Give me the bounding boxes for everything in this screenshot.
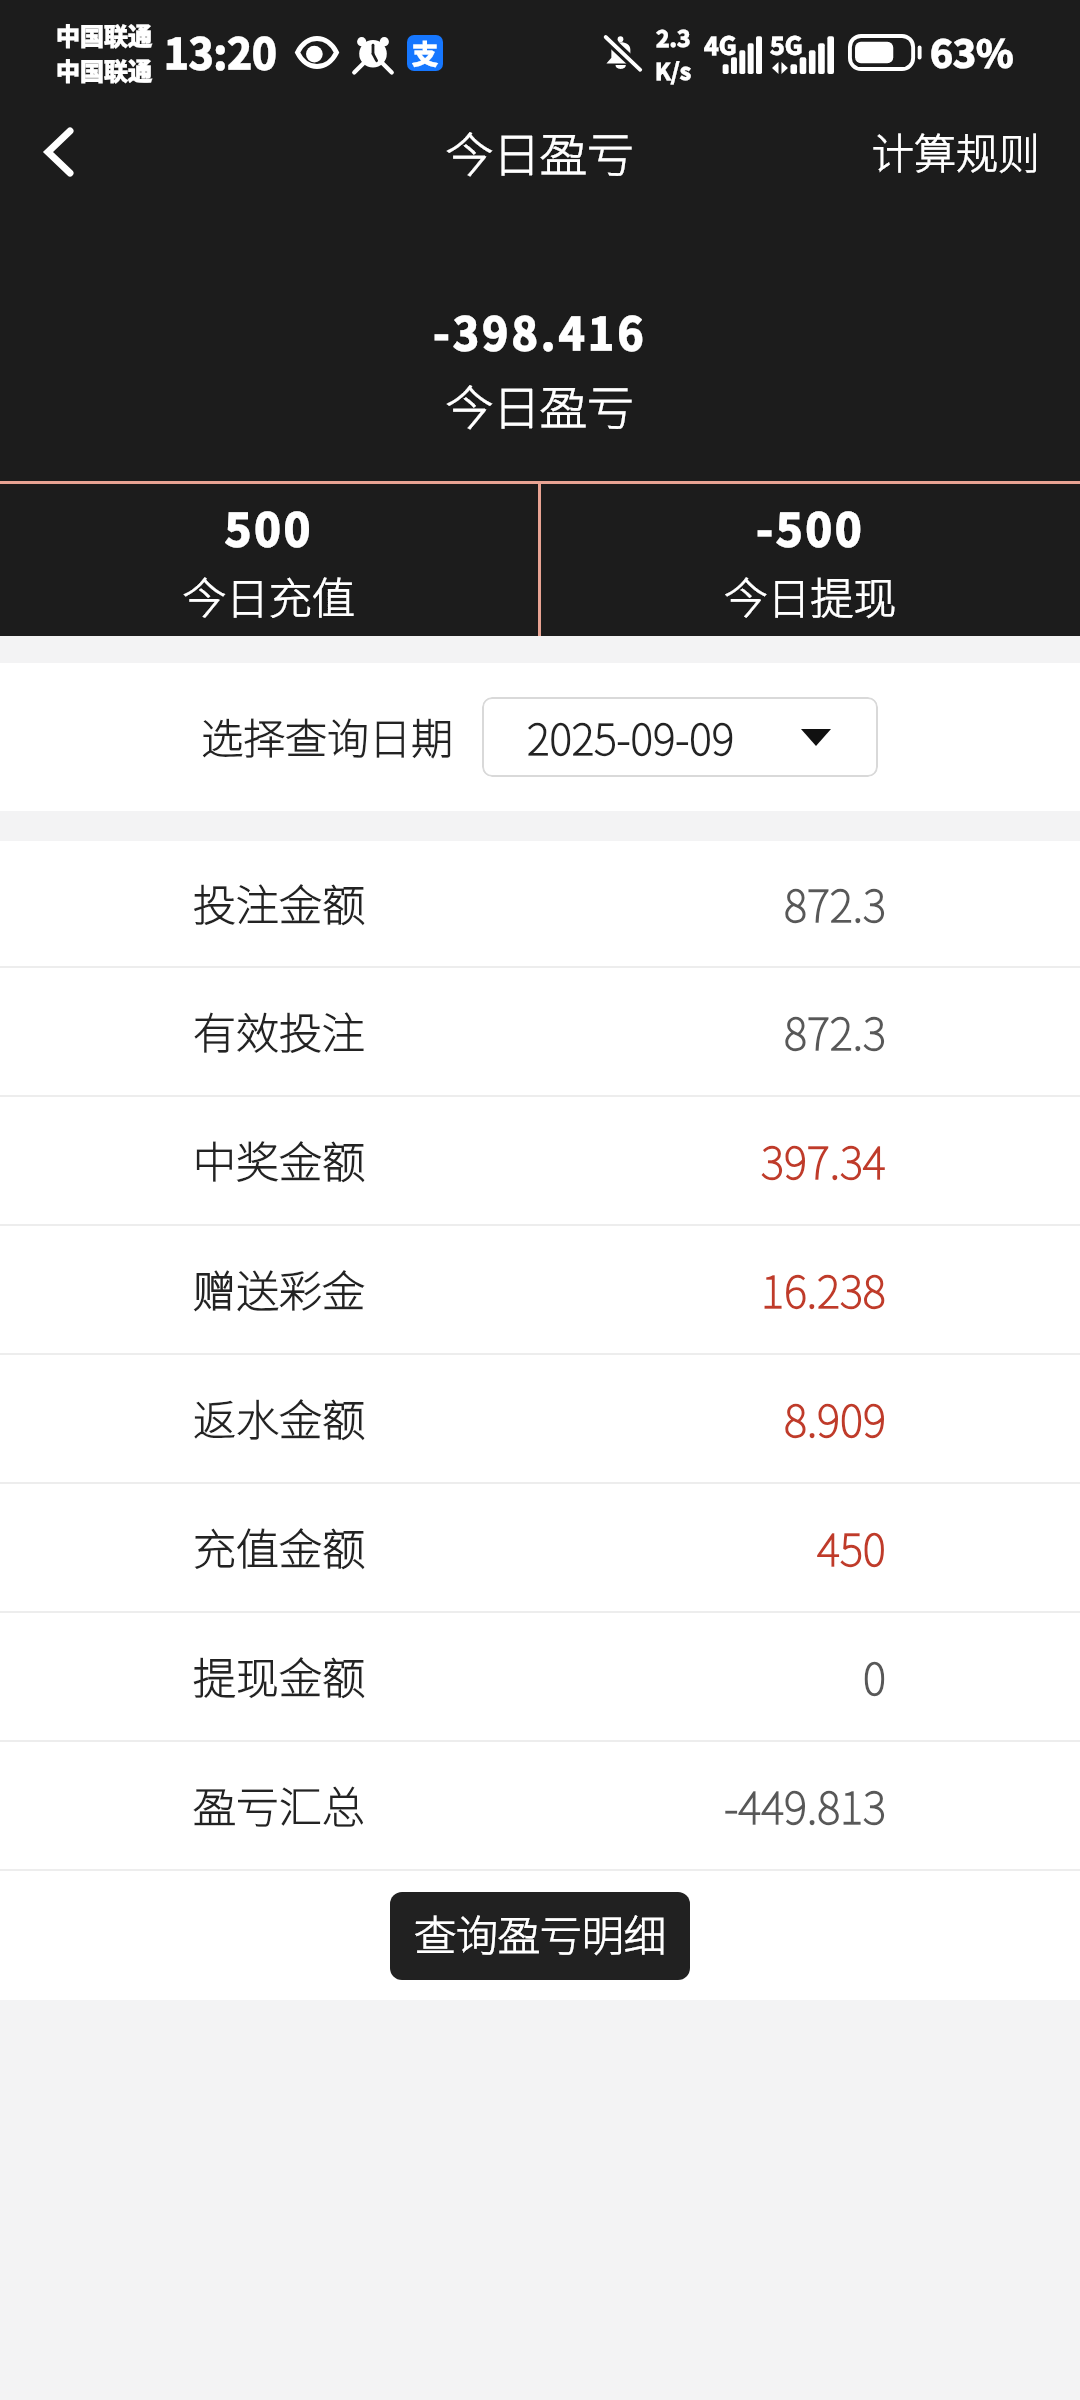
- button[interactable]: 充值金额: [0, 1484, 1080, 1611]
- button[interactable]: -500: [541, 484, 1080, 636]
- staticText: 872.3: [784, 999, 886, 1063]
- button[interactable]: 盈亏汇总: [0, 1742, 1080, 1869]
- staticText: 8.909: [784, 1386, 886, 1450]
- staticText: -398.416: [0, 299, 1080, 363]
- staticText: 返水金额: [193, 1386, 365, 1448]
- staticText: 盈亏汇总: [193, 1773, 365, 1835]
- staticText: -449.813: [724, 1773, 886, 1837]
- staticText: 赠送彩金: [193, 1257, 365, 1319]
- staticText: 中奖金额: [193, 1128, 365, 1190]
- staticText: 4G: [704, 26, 737, 62]
- staticText: 提现金额: [193, 1644, 365, 1706]
- button[interactable]: Back: [18, 105, 100, 200]
- staticText: 充值金额: [193, 1515, 365, 1577]
- staticText: 2025-09-09: [527, 705, 735, 767]
- button[interactable]: 返水金额: [0, 1355, 1080, 1482]
- staticText: 今日充值: [0, 564, 538, 626]
- staticText: 16.238: [761, 1257, 886, 1321]
- staticText: 计算规则: [872, 120, 1041, 181]
- button[interactable]: 投注金额: [0, 841, 1080, 966]
- staticText: K/s: [655, 53, 692, 86]
- button[interactable]: 提现金额: [0, 1613, 1080, 1740]
- staticText: 今日盈亏: [0, 117, 1080, 185]
- staticText: 有效投注: [193, 999, 365, 1061]
- staticText: 中国联通: [56, 17, 152, 52]
- staticText: 872.3: [784, 871, 886, 935]
- button[interactable]: 2025-09-09: [482, 697, 878, 777]
- button[interactable]: 500: [0, 484, 538, 636]
- button[interactable]: 计算规则: [911, 105, 1080, 200]
- staticText: 支: [412, 35, 439, 70]
- button[interactable]: 赠送彩金: [0, 1226, 1080, 1353]
- staticText: 2.3: [656, 20, 691, 53]
- staticText: 13:20: [164, 20, 277, 81]
- staticText: 查询盈亏明细: [414, 1902, 667, 1963]
- staticText: 今日提现: [541, 564, 1080, 626]
- staticText: 450: [817, 1515, 886, 1579]
- staticText: 5G: [770, 26, 803, 62]
- staticText: -500: [541, 494, 1080, 559]
- staticText: 今日盈亏: [0, 370, 1080, 438]
- staticText: 397.34: [761, 1128, 886, 1192]
- button[interactable]: 查询盈亏明细: [390, 1892, 690, 1980]
- staticText: 500: [0, 494, 538, 559]
- button[interactable]: 中奖金额: [0, 1097, 1080, 1224]
- staticText: 投注金额: [193, 871, 365, 933]
- staticText: 中国联通: [56, 52, 152, 87]
- staticText: 0: [863, 1644, 886, 1708]
- button[interactable]: 有效投注: [0, 968, 1080, 1095]
- staticText: 63%: [930, 23, 1014, 79]
- staticText: 选择查询日期: [201, 705, 454, 766]
